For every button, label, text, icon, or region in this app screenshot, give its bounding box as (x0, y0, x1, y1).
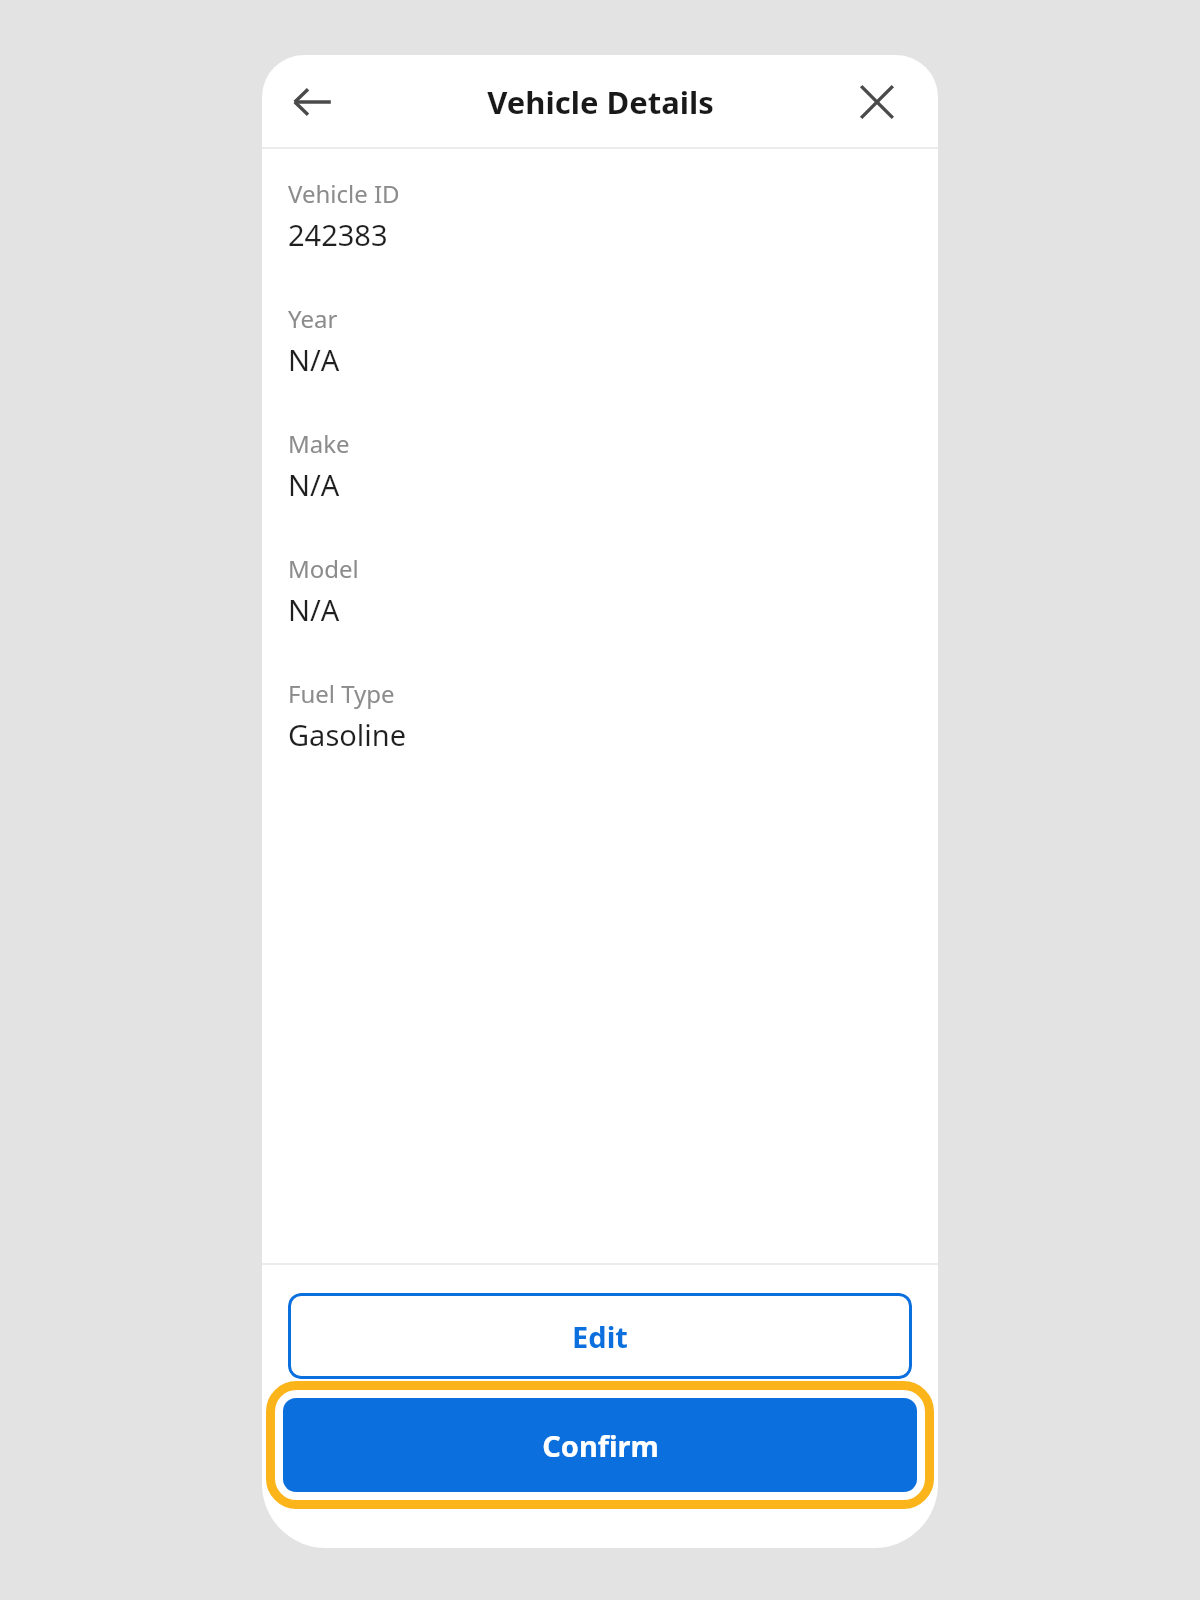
staticText: 242383 (288, 215, 388, 254)
staticText: Fuel Type (288, 677, 395, 710)
staticText: N/A (288, 340, 340, 379)
staticText: Vehicle ID (288, 177, 400, 210)
staticText: Gasoline (288, 715, 407, 754)
staticText: Confirm (542, 1426, 659, 1465)
button[interactable]: Close (846, 71, 908, 133)
staticText: Year (288, 302, 338, 335)
staticText: Make (288, 427, 350, 460)
staticText: Vehicle Details (487, 81, 714, 123)
staticText: Model (288, 552, 359, 585)
button[interactable]: Confirm (283, 1398, 917, 1492)
button[interactable]: Edit (288, 1293, 912, 1379)
staticText: N/A (288, 465, 340, 504)
button[interactable]: Back (281, 71, 343, 133)
staticText: N/A (288, 590, 340, 629)
staticText: Edit (572, 1317, 628, 1356)
